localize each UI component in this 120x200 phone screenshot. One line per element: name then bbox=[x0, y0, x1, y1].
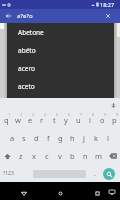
button[interactable]: s bbox=[18, 129, 30, 147]
button[interactable]: 9 bbox=[96, 111, 108, 129]
staticText: f bbox=[47, 133, 50, 143]
staticText: d bbox=[34, 133, 39, 143]
button[interactable]: 7 bbox=[72, 111, 84, 129]
button[interactable]: 6 bbox=[60, 111, 72, 129]
staticText: w bbox=[15, 115, 21, 125]
staticText: 7 bbox=[80, 112, 83, 117]
button[interactable]: f bbox=[42, 129, 54, 147]
button[interactable]: 5 bbox=[48, 111, 60, 129]
staticText: o bbox=[100, 115, 105, 125]
staticText: k bbox=[94, 133, 99, 143]
staticText: 0 bbox=[116, 112, 119, 117]
staticText: j bbox=[83, 133, 85, 143]
button[interactable]: a bbox=[6, 129, 18, 147]
staticText: 3 bbox=[32, 112, 35, 117]
staticText: 4 bbox=[44, 112, 47, 117]
button[interactable]: Shift bbox=[0, 147, 15, 165]
staticText: 6 bbox=[68, 112, 71, 117]
staticText: a?e?o bbox=[17, 12, 33, 20]
button[interactable]: 8 bbox=[84, 111, 96, 129]
staticText: s bbox=[22, 133, 26, 143]
staticText: acero bbox=[18, 64, 35, 73]
button[interactable]: Home bbox=[53, 186, 67, 200]
button[interactable]: . bbox=[89, 167, 101, 180]
staticText: abéto bbox=[18, 46, 36, 55]
button[interactable]: m bbox=[92, 147, 105, 165]
button[interactable]: Voice input bbox=[109, 101, 117, 109]
staticText: x bbox=[32, 151, 36, 161]
button[interactable]: z bbox=[15, 147, 27, 165]
staticText: 8 bbox=[92, 112, 95, 117]
staticText: p bbox=[112, 115, 117, 125]
button[interactable]: Delete bbox=[105, 147, 120, 165]
button[interactable]: Clear search bbox=[101, 9, 115, 23]
button[interactable]: Back bbox=[17, 186, 31, 200]
button[interactable]: Search bbox=[103, 168, 115, 180]
button[interactable]: 1 bbox=[0, 111, 12, 129]
button[interactable]: Hide keyboard bbox=[105, 185, 119, 199]
button[interactable]: Abetone bbox=[7, 23, 114, 41]
button[interactable]: l bbox=[102, 129, 114, 147]
button[interactable]: 4 bbox=[36, 111, 48, 129]
button[interactable]: acero bbox=[7, 59, 114, 77]
staticText: t bbox=[53, 115, 56, 125]
staticText: z bbox=[19, 151, 23, 161]
staticText: l bbox=[107, 133, 109, 143]
staticText: . bbox=[94, 169, 96, 179]
button[interactable]: Back bbox=[1, 9, 15, 23]
staticText: g bbox=[58, 133, 63, 143]
staticText: i bbox=[89, 115, 91, 125]
staticText: b bbox=[70, 151, 75, 161]
button[interactable]: g bbox=[54, 129, 66, 147]
staticText: m bbox=[95, 151, 103, 161]
staticText: 9 bbox=[104, 112, 107, 117]
staticText: q bbox=[4, 115, 9, 125]
staticText: u bbox=[76, 115, 81, 125]
staticText: 5 bbox=[56, 112, 59, 117]
button[interactable]: k bbox=[90, 129, 102, 147]
staticText: Abetone bbox=[18, 28, 44, 37]
button[interactable]: ?123 bbox=[1, 167, 15, 180]
button[interactable]: h bbox=[66, 129, 78, 147]
button[interactable]: 2 bbox=[12, 111, 24, 129]
button[interactable]: j bbox=[78, 129, 90, 147]
staticText: 1 bbox=[8, 112, 11, 117]
button[interactable]: n bbox=[79, 147, 92, 165]
button[interactable]: x bbox=[27, 147, 40, 165]
staticText: e bbox=[28, 115, 33, 125]
staticText: ?123 bbox=[3, 170, 14, 177]
staticText: aceto bbox=[18, 82, 35, 91]
button[interactable]: b bbox=[66, 147, 79, 165]
button[interactable]: d bbox=[30, 129, 42, 147]
staticText: a bbox=[10, 133, 15, 143]
staticText: 18:27 bbox=[100, 1, 115, 8]
staticText: n bbox=[83, 151, 88, 161]
button[interactable]: abéto bbox=[7, 41, 114, 59]
staticText: h bbox=[70, 133, 75, 143]
button[interactable]: aceto bbox=[7, 77, 114, 95]
button[interactable]: Recent apps bbox=[90, 186, 104, 200]
staticText: c bbox=[45, 151, 49, 161]
staticText: r bbox=[40, 115, 44, 125]
button[interactable]: v bbox=[53, 147, 66, 165]
button[interactable]: 3 bbox=[24, 111, 36, 129]
staticText: v bbox=[58, 151, 62, 161]
button[interactable]: c bbox=[40, 147, 53, 165]
staticText: 2 bbox=[20, 112, 23, 117]
button[interactable]: 0 bbox=[108, 111, 120, 129]
staticText: y bbox=[64, 115, 68, 125]
